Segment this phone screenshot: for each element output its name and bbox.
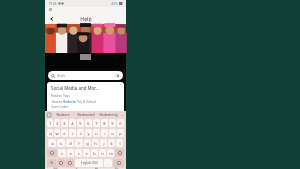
button[interactable]: t <box>77 129 84 137</box>
staticText: 4 <box>71 121 74 126</box>
staticText: Redeem <box>56 112 70 117</box>
staticText: Item Codes <box>51 105 69 109</box>
staticText: s <box>60 141 62 146</box>
button[interactable]: Recents <box>45 168 66 169</box>
button[interactable]: m <box>107 149 114 157</box>
staticText: Toy & Virtual <box>76 100 96 104</box>
staticText: m <box>109 151 113 156</box>
staticText: g <box>86 141 89 146</box>
staticText: l <box>119 141 121 146</box>
other: Search <box>51 74 55 78</box>
button[interactable]: Search <box>113 159 124 167</box>
button[interactable]: Social Media and Mor... <box>47 82 124 111</box>
button[interactable]: Back <box>47 14 56 23</box>
button[interactable]: e <box>61 129 68 137</box>
button[interactable]: 5 <box>77 119 84 127</box>
button[interactable]: d <box>66 139 74 147</box>
button[interactable]: 4 <box>69 119 76 127</box>
staticText: ⌄ <box>121 113 124 117</box>
staticText: q <box>49 131 52 136</box>
staticText: a <box>51 141 54 146</box>
button[interactable]: j <box>100 139 107 147</box>
staticText: Redeeming <box>99 112 118 117</box>
button[interactable]: i <box>101 129 108 137</box>
staticText: 9 <box>111 121 114 126</box>
button[interactable]: 0 <box>117 119 124 127</box>
button[interactable]: g <box>84 139 91 147</box>
button[interactable]: 3 <box>61 119 68 127</box>
button[interactable]: o <box>109 129 116 137</box>
staticText: x <box>69 151 72 156</box>
button[interactable]: Redeem <box>51 112 74 117</box>
button[interactable]: h <box>92 139 99 147</box>
staticText: 46% <box>111 2 118 6</box>
staticText: b <box>93 151 96 156</box>
button[interactable]: b <box>91 149 98 157</box>
button[interactable]: w <box>54 129 60 137</box>
staticText: !# <box>50 161 53 165</box>
button[interactable]: 8 <box>101 119 108 127</box>
button[interactable]: n <box>99 149 106 157</box>
button[interactable]: x <box>67 149 74 157</box>
button[interactable]: Backspace <box>115 149 124 157</box>
staticText: z <box>61 151 63 156</box>
staticText: o <box>111 131 114 136</box>
button[interactable]: p <box>117 129 124 137</box>
button[interactable]: !# <box>47 159 56 167</box>
button[interactable]: Settings <box>57 159 65 167</box>
staticText: c <box>78 151 80 156</box>
staticText: d <box>69 141 72 146</box>
button[interactable]: English (UK) <box>75 159 103 167</box>
button[interactable]: k <box>108 139 115 147</box>
button[interactable]: l <box>116 139 123 147</box>
button[interactable]: Search <box>48 71 123 80</box>
staticText: 19:06 <box>48 2 57 6</box>
button[interactable]: Clear <box>115 73 120 78</box>
button[interactable]: f <box>75 139 83 147</box>
staticText: t <box>80 131 82 136</box>
button[interactable]: q <box>47 129 53 137</box>
staticText: . <box>107 161 109 166</box>
button[interactable]: s <box>57 139 65 147</box>
button[interactable]: a <box>48 139 56 147</box>
button[interactable]: r <box>69 129 76 137</box>
staticText: 7 <box>95 121 98 126</box>
staticText: e <box>63 131 66 136</box>
staticText: 2 <box>56 121 59 126</box>
button[interactable]: v <box>83 149 90 157</box>
button[interactable]: Back <box>86 168 106 169</box>
button[interactable]: u <box>93 129 100 137</box>
staticText: n <box>101 151 104 156</box>
button[interactable]: Keyboard <box>106 168 126 169</box>
button[interactable]: c <box>75 149 82 157</box>
button[interactable]: Redeemed <box>74 112 97 117</box>
staticText: y <box>87 131 90 136</box>
staticText: 1 <box>49 121 52 126</box>
button[interactable]: Redeeming <box>97 112 120 117</box>
button[interactable]: 2 <box>54 119 60 127</box>
button[interactable]: y <box>85 129 92 137</box>
button[interactable]: Clipboard <box>47 113 51 117</box>
staticText: Redeemed <box>77 112 95 117</box>
staticText: Redeem <box>63 100 76 104</box>
staticText: Roblox Toys <box>51 93 70 98</box>
button[interactable]: 1 <box>47 119 53 127</box>
staticText: 3 <box>63 121 66 126</box>
button[interactable]: More <box>120 113 124 117</box>
button[interactable]: Home <box>66 168 86 169</box>
button[interactable]: Emoji <box>66 159 74 167</box>
staticText: 0 <box>119 121 122 126</box>
staticText: 5 <box>79 121 82 126</box>
button[interactable]: z <box>58 149 66 157</box>
button[interactable]: 9 <box>109 119 116 127</box>
staticText: Srch <box>57 73 65 78</box>
button[interactable]: Shift <box>47 149 57 157</box>
button[interactable]: 6 <box>85 119 92 127</box>
staticText: v <box>85 151 88 156</box>
button[interactable]: . <box>104 159 112 167</box>
button[interactable]: 7 <box>93 119 100 127</box>
staticText: r <box>72 131 74 136</box>
staticText: k <box>110 141 113 146</box>
staticText: u <box>95 131 98 136</box>
staticText: f <box>78 141 80 146</box>
